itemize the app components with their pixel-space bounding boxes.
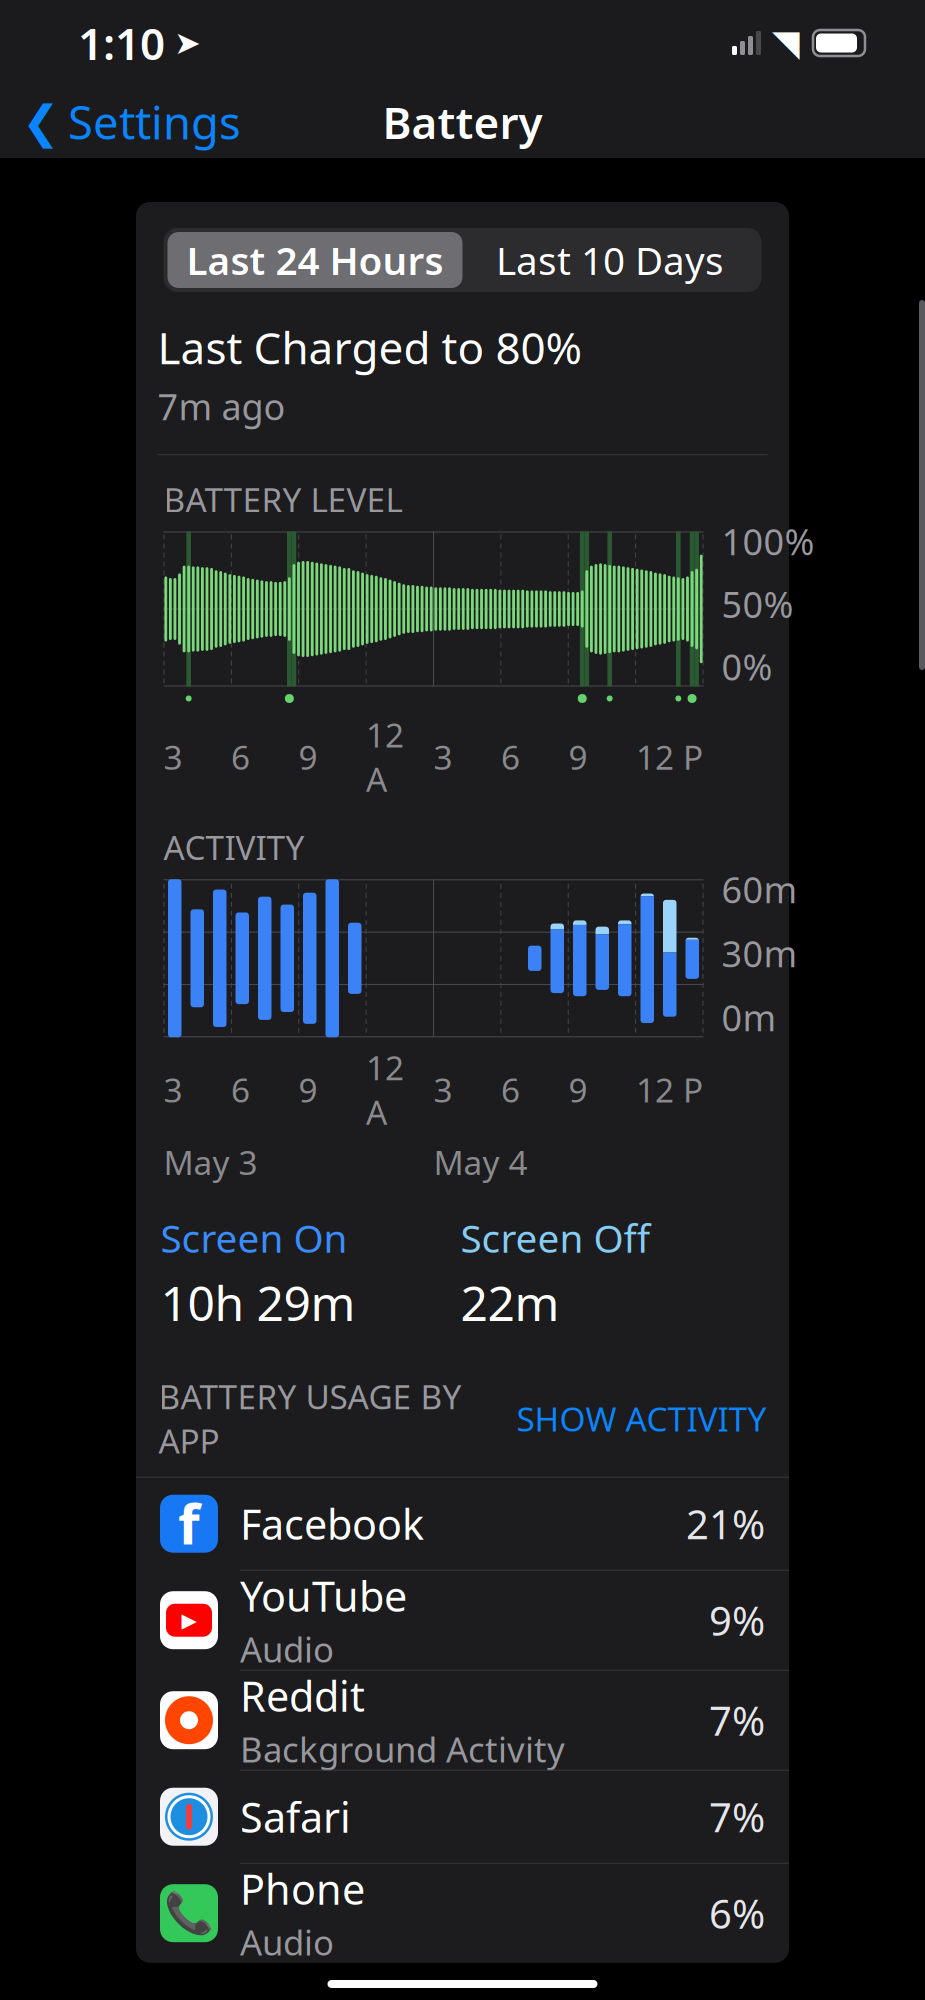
staticText: ACTIVITY — [163, 825, 304, 869]
staticText: 6% — [709, 1887, 765, 1940]
staticText: Phone — [240, 1861, 365, 1916]
button[interactable]: 📞 — [136, 1864, 789, 1963]
staticText: 10h 29m — [160, 1270, 355, 1334]
staticText: 📞 — [164, 1890, 214, 1936]
staticText: Background Activity — [240, 1726, 565, 1772]
staticText: 3 — [163, 735, 182, 779]
staticText: ▶ — [181, 1609, 196, 1632]
staticText: Audio — [240, 1626, 334, 1672]
staticText: 9 — [298, 1067, 317, 1112]
staticText: 3 — [163, 1067, 182, 1112]
staticText: Last 24 Hours — [186, 234, 443, 286]
staticText: Safari — [240, 1789, 351, 1844]
staticText: 12 A — [366, 712, 404, 801]
staticText: 3 — [433, 1067, 452, 1112]
staticText: 0m — [721, 993, 776, 1041]
button[interactable]: f — [136, 1478, 789, 1571]
staticText: 100% — [721, 517, 814, 565]
button[interactable]: ❮ — [0, 84, 241, 160]
staticText: Facebook — [240, 1496, 424, 1551]
staticText: 12 P — [636, 735, 703, 779]
staticText: 9 — [568, 735, 587, 779]
staticText: 7% — [709, 1790, 765, 1843]
button[interactable]: Last 10 Days — [462, 232, 757, 288]
staticText: 6 — [231, 735, 250, 779]
staticText: 1:10 — [78, 14, 165, 72]
staticText: Settings — [68, 92, 241, 152]
staticText: 60m — [721, 865, 797, 913]
staticText: Screen Off — [460, 1212, 650, 1263]
staticText: BATTERY USAGE BY APP — [158, 1374, 461, 1463]
button[interactable]: SHOW ACTIVITY — [516, 1396, 766, 1441]
staticText: ◥ — [772, 23, 800, 63]
staticText: BATTERY LEVEL — [163, 477, 402, 521]
staticText: 6 — [501, 1067, 520, 1112]
staticText: Screen On — [160, 1212, 347, 1263]
staticText: 9 — [568, 1067, 587, 1112]
staticText: f — [178, 1485, 200, 1560]
staticText: YouTube — [240, 1568, 407, 1623]
staticText: Last Charged to 80% — [157, 318, 582, 376]
staticText: May 4 — [433, 1140, 527, 1184]
staticText: 3 — [433, 735, 452, 779]
staticText: 12 A — [366, 1045, 404, 1134]
staticText: 9% — [709, 1594, 765, 1647]
button[interactable]: Safari — [136, 1771, 789, 1864]
staticText: Battery — [382, 93, 542, 151]
staticText: 21% — [686, 1497, 765, 1550]
staticText: 7m ago — [157, 382, 285, 430]
staticText: 22m — [460, 1270, 559, 1334]
staticText: 9 — [298, 735, 317, 779]
staticText: ❮ — [22, 96, 60, 148]
staticText: 7% — [709, 1694, 765, 1747]
button[interactable]: Reddit — [136, 1671, 789, 1771]
staticText: May 3 — [163, 1140, 257, 1184]
staticText: ➤ — [174, 25, 201, 61]
staticText: 50% — [721, 580, 793, 628]
staticText: Reddit — [240, 1668, 365, 1723]
staticText: 0% — [721, 643, 772, 690]
staticText: Audio — [240, 1919, 334, 1965]
staticText: SHOW ACTIVITY — [516, 1396, 766, 1441]
staticText: 6 — [501, 735, 520, 779]
staticText: 6 — [231, 1067, 250, 1112]
button[interactable]: ▶ — [136, 1571, 789, 1671]
staticText: Last 10 Days — [496, 234, 724, 286]
button[interactable]: Last 24 Hours — [167, 232, 462, 288]
staticText: 30m — [721, 929, 797, 977]
staticText: 12 P — [636, 1067, 703, 1112]
